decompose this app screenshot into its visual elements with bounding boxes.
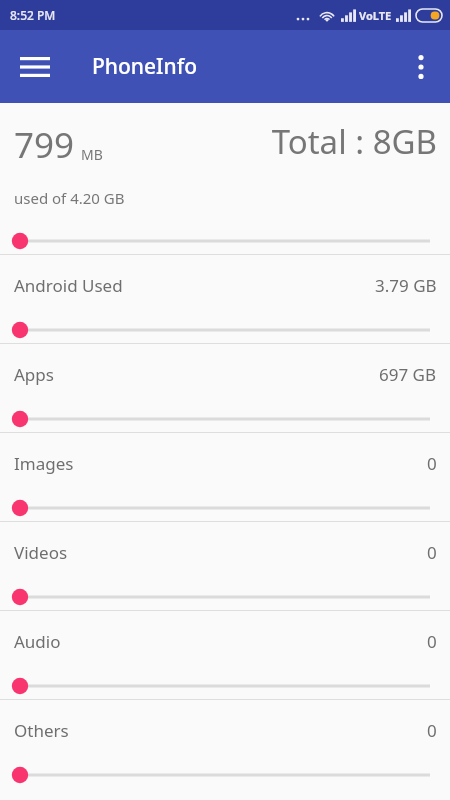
staticText: Videos bbox=[14, 541, 68, 564]
staticText: 0 bbox=[427, 541, 437, 564]
staticText: Others bbox=[14, 719, 69, 742]
button[interactable]: Storage usage slider bbox=[0, 494, 450, 521]
button[interactable]: Storage usage slider bbox=[0, 672, 450, 699]
staticText: 697 GB bbox=[379, 363, 437, 386]
staticText: 799 bbox=[14, 121, 75, 169]
button[interactable]: Storage usage slider bbox=[0, 405, 450, 432]
button[interactable]: Apps bbox=[0, 343, 450, 432]
button[interactable]: Videos bbox=[0, 521, 450, 610]
staticText: VoLTE bbox=[359, 8, 392, 23]
staticText: Images bbox=[14, 452, 74, 475]
button[interactable]: Storage usage slider bbox=[0, 316, 450, 343]
button[interactable]: Storage usage slider bbox=[0, 583, 450, 610]
button[interactable]: Audio bbox=[0, 610, 450, 699]
button[interactable]: Storage usage slider bbox=[0, 761, 450, 788]
staticText: used of 4.20 GB bbox=[14, 188, 125, 208]
staticText: Total : 8GB bbox=[271, 119, 437, 164]
button[interactable]: Others bbox=[0, 699, 450, 788]
button[interactable]: Android Used bbox=[0, 254, 450, 343]
button[interactable]: Images bbox=[0, 432, 450, 521]
button[interactable]: Open navigation menu bbox=[10, 42, 60, 92]
staticText: 3.79 GB bbox=[375, 274, 437, 297]
staticText: Audio bbox=[14, 630, 61, 653]
staticText: 0 bbox=[427, 452, 437, 475]
staticText: 8:52 PM bbox=[10, 7, 56, 23]
staticText: MB bbox=[81, 145, 103, 164]
button[interactable]: More options bbox=[398, 44, 444, 90]
staticText: 0 bbox=[427, 630, 437, 653]
staticText: Android Used bbox=[14, 274, 123, 297]
button[interactable]: Storage usage slider bbox=[0, 227, 450, 254]
staticText: Apps bbox=[14, 363, 54, 386]
staticText: PhoneInfo bbox=[92, 52, 197, 81]
staticText: 0 bbox=[427, 719, 437, 742]
